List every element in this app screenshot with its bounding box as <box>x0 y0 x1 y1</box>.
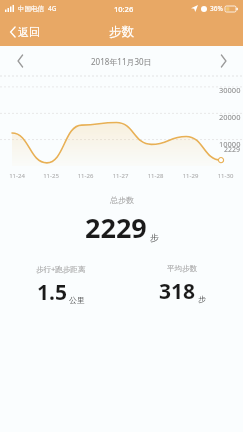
staticText: 平均步数 <box>167 264 197 273</box>
staticText: 中国电信 <box>18 5 44 13</box>
staticText: 步行+跑步距离 <box>36 264 86 274</box>
staticText: 2018年11月30日 <box>91 56 152 67</box>
staticText: 30000 <box>219 85 241 95</box>
staticText: 20000 <box>219 112 241 122</box>
staticText: 11-29 <box>173 172 208 180</box>
button[interactable]: 返回 <box>6 21 44 43</box>
staticText: 1.5 <box>37 278 67 307</box>
staticText: 步 <box>198 294 206 304</box>
button[interactable]: Next day <box>213 51 233 71</box>
staticText: 10000 <box>219 139 241 149</box>
staticText: 2229 <box>224 145 241 155</box>
staticText: 11-30 <box>208 172 243 180</box>
staticText: 11-28 <box>138 172 173 180</box>
button[interactable]: Previous day <box>10 51 30 71</box>
button[interactable]: 步行+跑步距离 <box>0 264 121 307</box>
staticText: 318 <box>159 277 196 306</box>
staticText: 步 <box>150 232 159 243</box>
staticText: 返回 <box>18 25 40 39</box>
staticText: 步数 <box>109 24 134 40</box>
staticText: 36% <box>210 4 223 13</box>
staticText: 11-24 <box>0 172 34 180</box>
staticText: 公里 <box>69 295 85 305</box>
staticText: 11-27 <box>103 172 138 180</box>
staticText: 4G <box>48 4 57 13</box>
staticText: 2229 <box>85 209 147 246</box>
staticText: 11-26 <box>68 172 103 180</box>
staticText: 11-25 <box>34 172 68 180</box>
staticText: 10:26 <box>114 4 134 14</box>
staticText: 总步数 <box>110 195 134 205</box>
button[interactable]: 平均步数 <box>121 264 243 306</box>
